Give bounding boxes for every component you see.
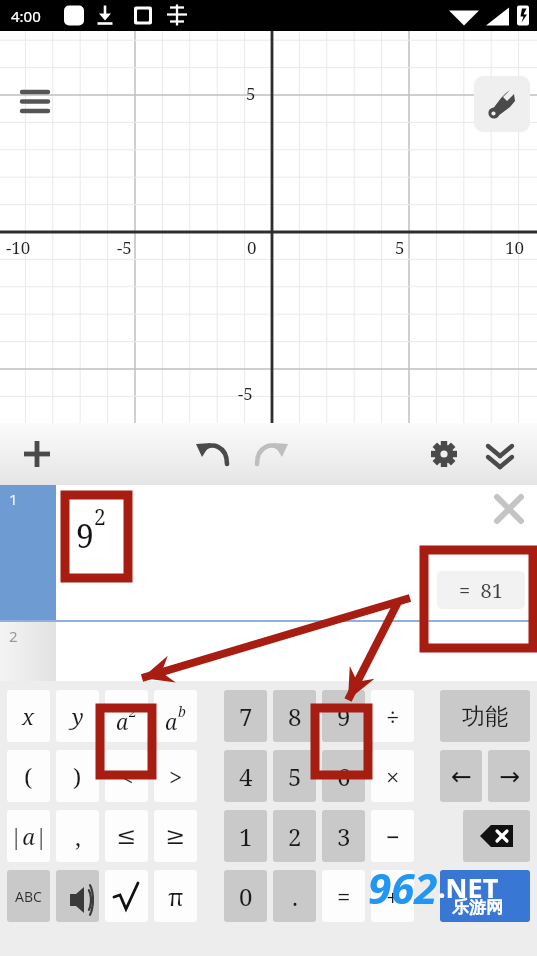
staticText: → — [499, 762, 520, 791]
button[interactable]: → — [488, 750, 530, 802]
staticText: 功能 — [462, 702, 508, 731]
button[interactable]: < — [105, 750, 148, 802]
button[interactable]: 4 — [224, 750, 267, 802]
staticText: 7 — [239, 700, 253, 733]
button[interactable]: Undo — [189, 423, 237, 485]
button[interactable]: + — [371, 870, 414, 922]
button[interactable]: 8 — [273, 690, 316, 742]
button[interactable]: Sound — [56, 870, 99, 922]
staticText: x — [22, 701, 35, 731]
button[interactable]: 5 — [273, 750, 316, 802]
button[interactable]: Backspace — [463, 810, 530, 862]
staticText: 9 — [76, 514, 94, 558]
staticText: 5 — [246, 82, 256, 105]
button[interactable]: . — [273, 870, 316, 922]
button[interactable]: 1 — [224, 810, 267, 862]
button[interactable]: Collapse keypad — [478, 423, 522, 485]
staticText: ÷ — [386, 700, 400, 733]
button[interactable]: 6 — [322, 750, 365, 802]
staticText: 1 — [239, 820, 253, 853]
button[interactable]: ← — [440, 750, 482, 802]
staticText: 1 — [9, 489, 18, 509]
button[interactable]: − — [371, 810, 414, 862]
button[interactable]: × — [371, 750, 414, 802]
staticText: 2 — [9, 626, 18, 646]
button[interactable]: ÷ — [371, 690, 414, 742]
staticText: b — [178, 702, 186, 721]
button[interactable]: 7 — [224, 690, 267, 742]
staticText: 2 — [94, 503, 106, 532]
button[interactable]: Graph tools — [474, 76, 530, 132]
staticText: 8 — [288, 700, 302, 733]
button[interactable]: Delete expression — [487, 487, 531, 531]
button[interactable]: a — [154, 690, 197, 742]
staticText: 9 — [337, 700, 351, 733]
staticText: 2 — [129, 702, 137, 721]
button[interactable]: 1 — [0, 485, 537, 620]
button[interactable]: 2 — [273, 810, 316, 862]
button[interactable]: ) — [56, 750, 99, 802]
button[interactable]: x — [7, 690, 50, 742]
button[interactable]: , — [56, 810, 99, 862]
staticText: ← — [451, 762, 472, 791]
staticText: a — [165, 708, 178, 737]
button[interactable]: 3 — [322, 810, 365, 862]
staticText: ≥ — [165, 822, 186, 850]
staticText: . — [292, 880, 298, 913]
staticText: = 81 — [459, 577, 503, 604]
button[interactable]: Settings — [422, 423, 466, 485]
staticText: × — [386, 760, 400, 793]
button[interactable]: > — [154, 750, 197, 802]
staticText: -5 — [238, 382, 253, 405]
staticText: -10 — [6, 236, 31, 259]
button[interactable]: ( — [7, 750, 50, 802]
staticText: 2 — [288, 820, 302, 853]
staticText: 5 — [288, 760, 302, 793]
staticText: a — [116, 708, 129, 737]
button[interactable]: |a| — [7, 810, 50, 862]
staticText: ) — [73, 760, 82, 793]
button[interactable]: Square root — [105, 870, 148, 922]
staticText: π — [168, 880, 184, 913]
staticText: 10 — [505, 236, 525, 259]
button[interactable]: a — [105, 690, 148, 742]
button[interactable]: y — [56, 690, 99, 742]
staticText: 962 — [368, 859, 438, 916]
button[interactable]: Redo — [247, 423, 295, 485]
staticText: .NET — [438, 869, 499, 906]
staticText: 6 — [337, 760, 351, 793]
button[interactable]: 0 — [224, 870, 267, 922]
staticText: 5 — [395, 236, 405, 259]
button[interactable]: Enter — [440, 870, 530, 922]
staticText: , — [75, 820, 81, 853]
staticText: = — [337, 880, 351, 913]
button[interactable]: ABC — [7, 870, 50, 922]
staticText: |a| — [10, 821, 48, 851]
staticText: − — [386, 820, 400, 853]
button[interactable]: 2 — [0, 622, 537, 681]
button[interactable]: 9 — [322, 690, 365, 742]
button[interactable]: Add expression — [13, 423, 61, 485]
button[interactable]: 功能 — [440, 690, 530, 742]
staticText: 4 — [239, 760, 253, 793]
staticText: 3 — [337, 820, 351, 853]
staticText: ≤ — [116, 822, 137, 850]
staticText: ( — [24, 760, 33, 793]
staticText: + — [386, 880, 400, 913]
staticText: 0 — [247, 236, 257, 259]
staticText: -5 — [117, 236, 132, 259]
button[interactable]: = — [322, 870, 365, 922]
button[interactable]: Menu — [15, 80, 57, 122]
staticText: > — [169, 760, 183, 793]
button[interactable]: π — [154, 870, 197, 922]
staticText: 0 — [239, 880, 253, 913]
button[interactable]: ≥ — [154, 810, 197, 862]
button[interactable]: ≤ — [105, 810, 148, 862]
staticText: < — [120, 760, 134, 793]
staticText: y — [72, 701, 84, 731]
staticText: 4:00 — [11, 6, 41, 26]
button[interactable]: = 81 — [437, 571, 525, 609]
staticText: ABC — [15, 887, 42, 906]
staticText: 乐游网 — [452, 897, 503, 918]
